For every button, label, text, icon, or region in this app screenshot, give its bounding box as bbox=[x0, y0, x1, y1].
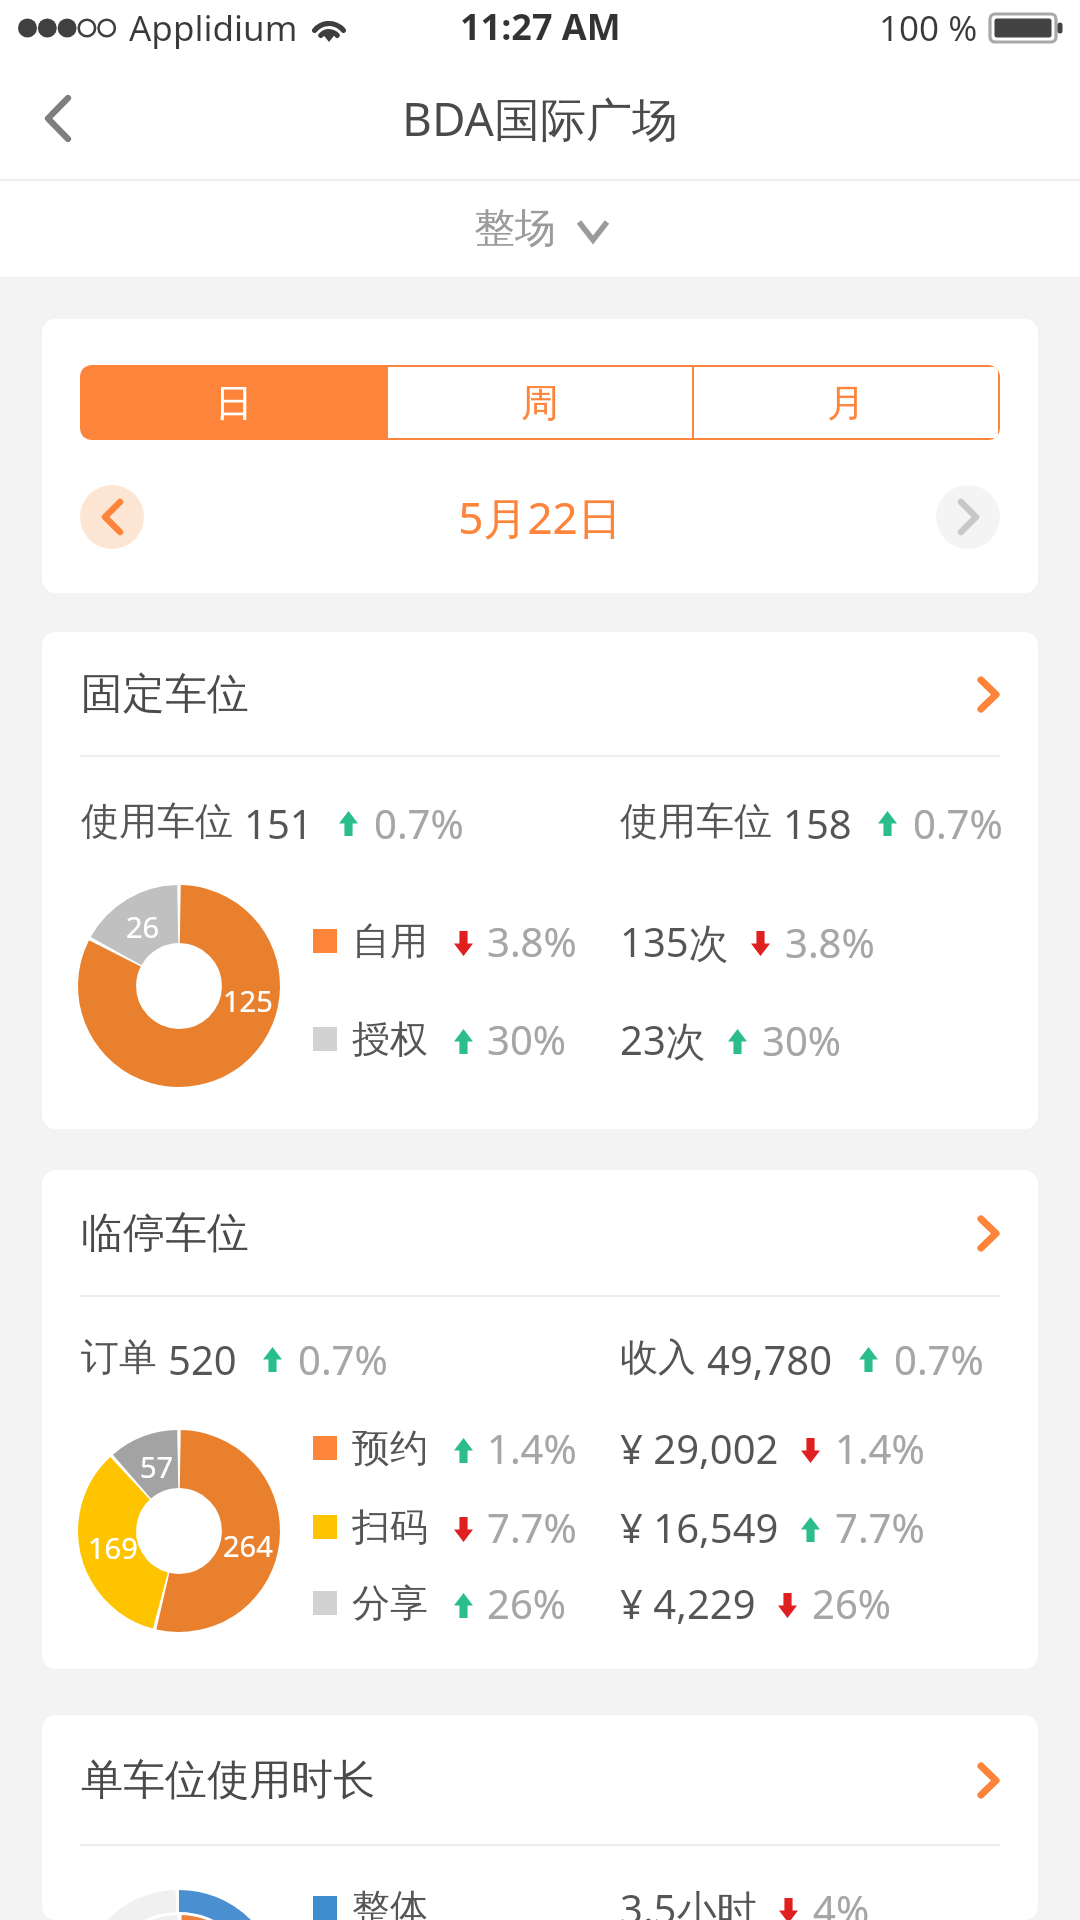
staticText: 11:27 AM bbox=[460, 2, 621, 51]
button[interactable]: 单车位使用时长 bbox=[42, 1715, 1038, 1846]
staticText: 169 bbox=[88, 1528, 138, 1567]
staticText: 0.7% bbox=[298, 1332, 388, 1382]
staticText: 月 bbox=[827, 379, 865, 427]
staticText: BDA国际广场 bbox=[402, 87, 678, 150]
staticText: 扫码 bbox=[352, 1503, 428, 1551]
staticText: ¥ 16,549 bbox=[620, 1500, 779, 1554]
staticText: 23次 bbox=[620, 1012, 706, 1067]
staticText: 使用车位 bbox=[620, 797, 772, 845]
button[interactable]: 周 bbox=[388, 367, 692, 438]
staticText: 7.7% bbox=[835, 1500, 925, 1554]
staticText: 订单 bbox=[81, 1333, 157, 1381]
staticText: 分享 bbox=[352, 1579, 428, 1627]
button[interactable]: Back bbox=[0, 55, 115, 181]
staticText: 0.7% bbox=[913, 796, 1003, 846]
staticText: Applidium bbox=[129, 4, 298, 52]
staticText: 0.7% bbox=[374, 796, 464, 846]
staticText: 周 bbox=[521, 379, 559, 427]
button[interactable]: 预约 bbox=[42, 1419, 1038, 1477]
button[interactable]: 授权 bbox=[42, 1010, 1038, 1068]
staticText: 预约 bbox=[352, 1424, 428, 1472]
button[interactable]: 自用 bbox=[42, 912, 1038, 970]
staticText: 使用车位 bbox=[81, 797, 233, 845]
staticText: 临停车位 bbox=[81, 1207, 249, 1260]
staticText: 3.8% bbox=[785, 915, 875, 969]
button[interactable]: 月 bbox=[694, 367, 998, 438]
staticText: 520 bbox=[168, 1332, 237, 1382]
staticText: 0.7% bbox=[894, 1332, 984, 1382]
staticText: 125 bbox=[223, 981, 273, 1020]
staticText: 264 bbox=[223, 1526, 273, 1565]
button[interactable]: Next day bbox=[936, 485, 1000, 549]
staticText: ¥ 29,002 bbox=[620, 1421, 779, 1475]
staticText: 26% bbox=[487, 1576, 566, 1630]
staticText: 整场 bbox=[474, 203, 556, 255]
staticText: 收入 bbox=[620, 1333, 696, 1381]
staticText: 固定车位 bbox=[81, 668, 249, 721]
staticText: 7.7% bbox=[487, 1500, 577, 1554]
staticText: 5月22日 bbox=[144, 487, 936, 547]
staticText: 授权 bbox=[352, 1015, 428, 1063]
button[interactable]: 扫码 bbox=[42, 1498, 1038, 1556]
button[interactable]: 分享 bbox=[42, 1574, 1038, 1632]
staticText: 1.4% bbox=[487, 1421, 577, 1475]
staticText: ¥ 4,229 bbox=[620, 1576, 756, 1630]
staticText: 30% bbox=[762, 1013, 841, 1067]
staticText: 49,780 bbox=[707, 1332, 833, 1382]
button[interactable]: 固定车位 bbox=[42, 632, 1038, 757]
staticText: 26 bbox=[126, 907, 160, 946]
staticText: 26% bbox=[812, 1576, 891, 1630]
staticText: 3.8% bbox=[487, 914, 577, 968]
staticText: 151 bbox=[244, 796, 313, 846]
button[interactable]: Previous day bbox=[80, 485, 144, 549]
staticText: 158 bbox=[783, 796, 852, 846]
staticText: 3.5小时 bbox=[620, 1881, 757, 1920]
button[interactable]: 临停车位 bbox=[42, 1170, 1038, 1297]
staticText: 1.4% bbox=[835, 1421, 925, 1475]
staticText: 100 % bbox=[879, 4, 978, 52]
staticText: 30% bbox=[487, 1012, 566, 1066]
staticText: 日 bbox=[215, 379, 253, 427]
staticText: 自用 bbox=[352, 917, 428, 965]
staticText: 4% bbox=[813, 1882, 870, 1920]
staticText: 单车位使用时长 bbox=[81, 1754, 375, 1807]
staticText: 整体 bbox=[352, 1884, 428, 1920]
staticText: 135次 bbox=[620, 914, 729, 969]
staticText: 57 bbox=[140, 1447, 174, 1486]
button[interactable]: 整场 bbox=[474, 203, 607, 255]
button[interactable]: 日 bbox=[82, 367, 386, 438]
